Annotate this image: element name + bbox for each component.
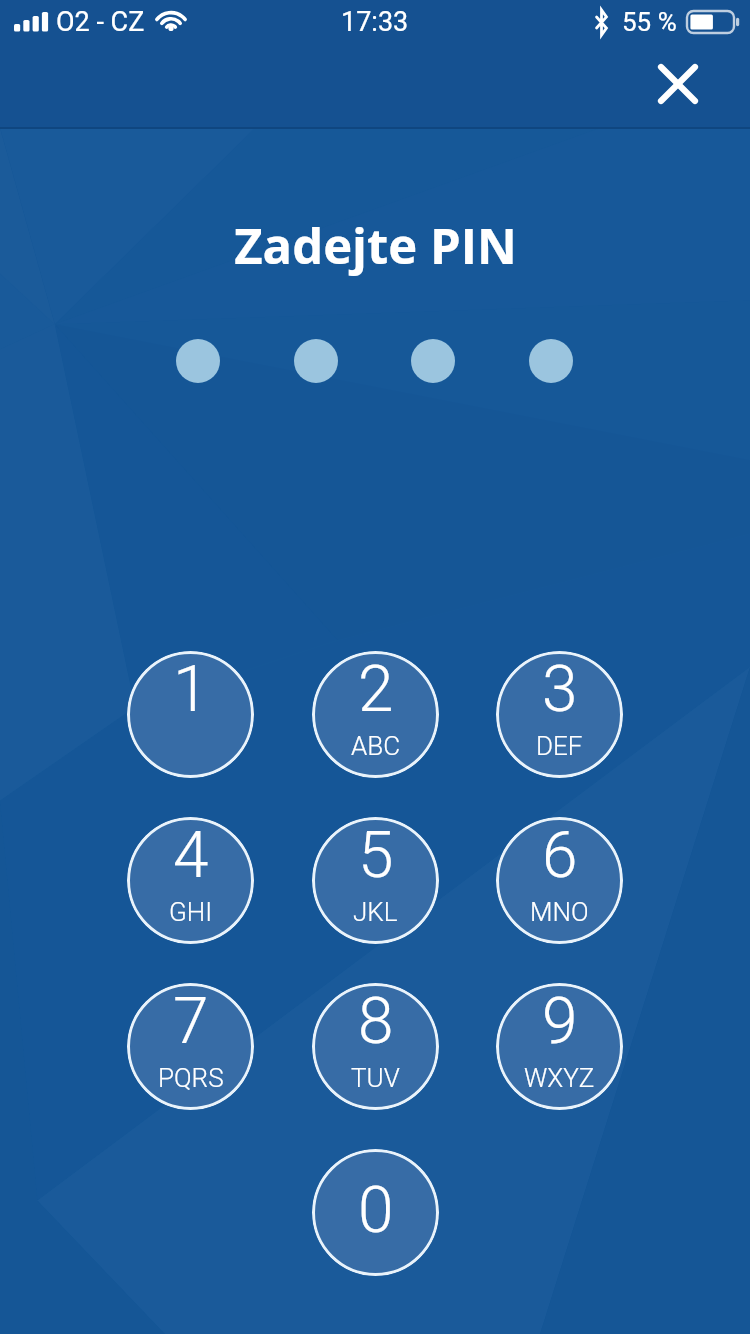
staticText: Zadejte PIN <box>234 212 517 279</box>
staticText: 2 <box>358 652 394 727</box>
staticText: 4 <box>173 818 209 893</box>
button[interactable]: 3 <box>496 651 623 778</box>
staticText: 55 % <box>622 7 677 37</box>
staticText: ABC <box>351 731 401 761</box>
staticText: 6 <box>542 818 578 893</box>
staticText: PQRS <box>158 1063 224 1093</box>
staticText: 7 <box>173 984 209 1059</box>
staticText: JKL <box>353 897 398 927</box>
staticText: TUV <box>351 1063 400 1093</box>
button[interactable]: 0 <box>312 1149 439 1276</box>
button[interactable]: 2 <box>312 651 439 778</box>
staticText: 1 <box>173 652 209 727</box>
button[interactable]: 6 <box>496 817 623 944</box>
staticText: 8 <box>358 984 394 1059</box>
staticText: 0 <box>358 1173 394 1248</box>
button[interactable]: 7 <box>127 983 254 1110</box>
staticText: GHI <box>169 897 213 927</box>
button[interactable]: 8 <box>312 983 439 1110</box>
staticText: 5 <box>358 818 394 893</box>
button[interactable]: 9 <box>496 983 623 1110</box>
staticText: DEF <box>536 731 583 761</box>
button[interactable]: 4 <box>127 817 254 944</box>
staticText: 3 <box>542 652 578 727</box>
staticText: 17:33 <box>341 6 409 38</box>
staticText: WXYZ <box>524 1063 595 1093</box>
staticText: O2 - CZ <box>56 6 145 38</box>
button[interactable]: Close <box>642 48 714 120</box>
button[interactable]: 5 <box>312 817 439 944</box>
staticText: 9 <box>542 984 578 1059</box>
button[interactable]: 1 <box>127 651 254 778</box>
staticText: MNO <box>530 897 589 927</box>
